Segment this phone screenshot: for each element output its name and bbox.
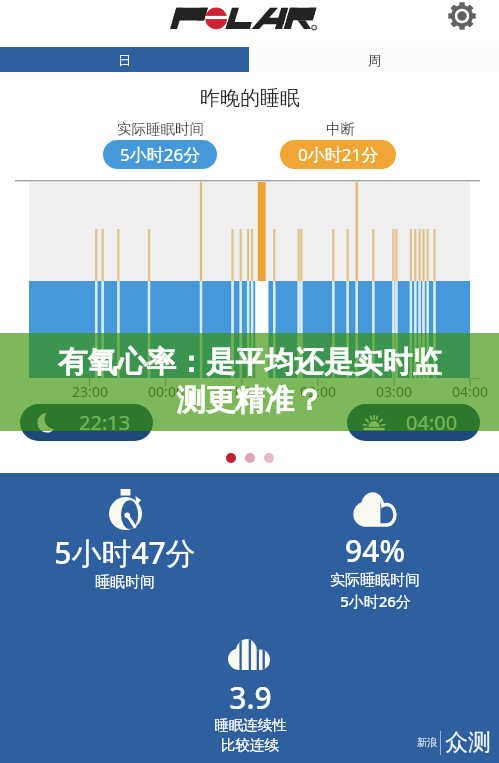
staticText: 3.9 bbox=[229, 677, 272, 718]
button[interactable] bbox=[226, 453, 236, 463]
staticText: 04:00 bbox=[406, 409, 458, 436]
button[interactable]: 5小时26分 bbox=[103, 140, 217, 169]
staticText: 02:00 bbox=[300, 382, 336, 401]
button[interactable]: 周 bbox=[249, 47, 499, 72]
staticText: 中断 bbox=[326, 120, 355, 138]
button[interactable]: 日 bbox=[0, 47, 249, 72]
staticText: 测更精准？ bbox=[176, 382, 324, 419]
staticText: 昨晚的睡眠 bbox=[200, 86, 300, 111]
staticText: 实际睡眠时间 bbox=[117, 120, 204, 138]
button[interactable]: 0小时21分 bbox=[280, 140, 396, 169]
staticText: 5小时47分 bbox=[54, 532, 196, 573]
staticText: 23:00 bbox=[72, 382, 108, 401]
staticText: 实际睡眠时间 bbox=[330, 571, 420, 590]
button[interactable]: 04:00 bbox=[347, 404, 480, 441]
staticText: 睡眠连续性 bbox=[214, 716, 287, 734]
staticText: 5小时26分 bbox=[120, 143, 201, 166]
staticText: 日 bbox=[118, 52, 131, 68]
button[interactable] bbox=[245, 453, 255, 463]
staticText: 00:00 bbox=[148, 382, 184, 401]
staticText: 01:00 bbox=[224, 382, 260, 401]
staticText: 新浪 bbox=[417, 736, 437, 749]
button[interactable]: Settings bbox=[448, 2, 476, 30]
staticText: 04:00 bbox=[452, 382, 488, 401]
staticText: 5小时26分 bbox=[340, 591, 411, 611]
staticText: 周 bbox=[368, 52, 381, 68]
button[interactable] bbox=[264, 453, 274, 463]
staticText: 众测 bbox=[445, 728, 491, 757]
staticText: 94% bbox=[345, 530, 405, 571]
button[interactable]: 22:13 bbox=[20, 404, 153, 441]
staticText: 0小时21分 bbox=[298, 143, 379, 166]
staticText: 有氧心率：是平均还是实时监 bbox=[58, 344, 442, 381]
button[interactable] bbox=[0, 333, 499, 431]
staticText: 比较连续 bbox=[221, 736, 279, 754]
staticText: 睡眠时间 bbox=[95, 573, 155, 592]
staticText: 03:00 bbox=[376, 382, 412, 401]
staticText: 22:13 bbox=[79, 409, 131, 436]
